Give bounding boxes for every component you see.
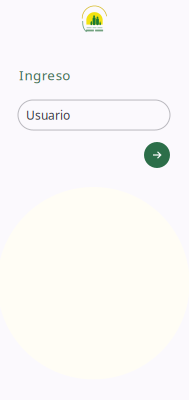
staticText: Usuario bbox=[26, 107, 70, 123]
staticText: Ingreso bbox=[19, 66, 70, 84]
button[interactable]: Usuario bbox=[18, 100, 170, 130]
button[interactable]: Continuar bbox=[144, 142, 170, 168]
